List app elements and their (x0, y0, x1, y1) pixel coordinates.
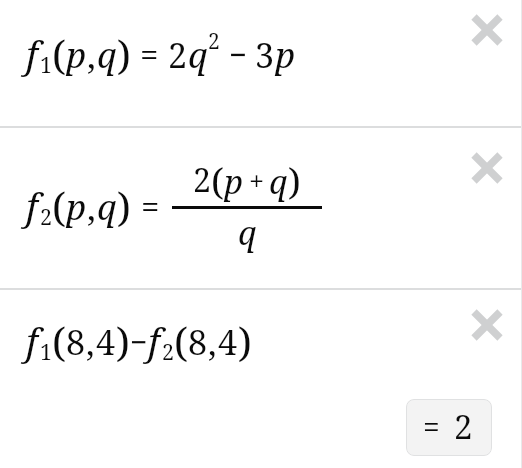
button[interactable]: Delete expression (464, 302, 510, 348)
staticText: − (130, 321, 148, 362)
staticText: f (26, 180, 38, 230)
staticText: ( (52, 314, 66, 368)
staticText: p (275, 31, 296, 79)
staticText: = (141, 184, 160, 229)
staticText: 2 (40, 202, 52, 231)
staticText: q (238, 210, 257, 255)
staticText: ) (288, 155, 301, 205)
staticText: 4 (218, 319, 238, 365)
staticText: , (87, 183, 96, 231)
staticText: 1 (40, 50, 52, 79)
staticText: 2 (162, 337, 174, 366)
staticText: 2 (193, 158, 211, 202)
staticText: 3 (255, 32, 275, 78)
staticText: ) (117, 27, 131, 81)
button[interactable]: Delete expression (464, 7, 510, 53)
staticText: q (97, 183, 117, 231)
staticText: = (423, 406, 440, 447)
button[interactable]: f (0, 0, 522, 126)
staticText: 1 (40, 337, 52, 366)
staticText: 2 (208, 27, 220, 56)
staticText: p (66, 31, 87, 79)
staticText: f (26, 28, 38, 78)
staticText: 2 (454, 404, 473, 449)
button[interactable]: Delete expression (464, 145, 510, 191)
staticText: = (140, 32, 159, 77)
staticText: ( (52, 179, 66, 233)
staticText: f (148, 315, 160, 365)
staticText: ( (211, 155, 224, 205)
staticText: 8 (66, 319, 86, 365)
staticText: 2 (168, 32, 188, 78)
staticText: + (249, 162, 265, 199)
staticText: q (188, 31, 208, 79)
staticText: q (97, 31, 117, 79)
staticText: ) (116, 314, 130, 368)
staticText: p (224, 159, 244, 204)
button[interactable]: f (0, 290, 522, 468)
staticText: ( (52, 27, 66, 81)
staticText: 8 (188, 319, 208, 365)
staticText: , (87, 31, 96, 79)
staticText: ) (238, 314, 252, 368)
button[interactable]: = (406, 399, 492, 456)
staticText: ( (174, 314, 188, 368)
staticText: 4 (96, 319, 116, 365)
staticText: f (26, 315, 38, 365)
staticText: , (86, 319, 95, 365)
staticText: ) (117, 179, 131, 233)
staticText: − (229, 33, 247, 75)
button[interactable]: f (0, 128, 522, 288)
staticText: p (66, 183, 87, 231)
staticText: q (269, 159, 288, 204)
staticText: , (208, 319, 217, 365)
